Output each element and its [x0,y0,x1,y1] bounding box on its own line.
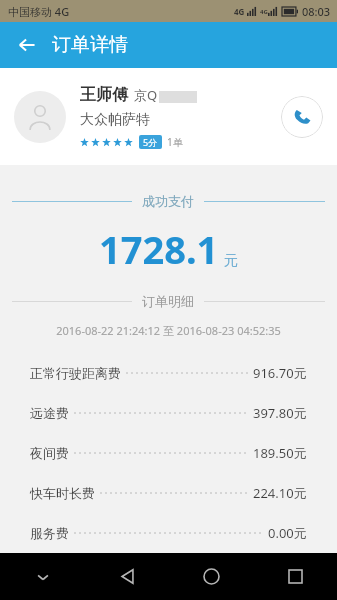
button[interactable]: Call driver [281,96,323,138]
staticText: 189.50元 [253,444,307,462]
staticText: 正常行驶距离费 [30,365,121,381]
staticText: 5分 [143,136,158,148]
staticText: 08:03 [302,4,331,19]
staticText: 订单明细 [142,293,194,309]
button[interactable]: Back [85,553,169,600]
staticText: 王师傅 [80,85,128,105]
staticText: 916.70元 [253,364,307,382]
staticText: 2016-08-22 21:24:12 至 2016-08-23 04:52:3… [0,323,337,338]
button[interactable]: Home [169,553,253,600]
staticText: 224.10元 [253,484,307,502]
staticText: 订单详情 [52,33,128,57]
staticText: 成功支付 [142,193,194,209]
staticText: 1728.1 [99,223,219,275]
staticText: 大众帕萨特 [80,111,150,129]
staticText: 快车时长费 [30,485,95,501]
staticText: 0.00元 [268,524,307,542]
staticText: 元 [224,252,238,270]
staticText: 397.80元 [253,404,307,422]
staticText: 1单 [167,135,183,149]
staticText: 服务费 [30,525,69,541]
button[interactable]: 王师傅 [0,68,337,165]
button[interactable]: Hide navigation bar [0,553,85,600]
staticText: 中国移动 4G [8,4,70,19]
staticText: 4G [260,8,268,16]
staticText: 4G [234,6,245,17]
staticText: 夜间费 [30,445,69,461]
button[interactable]: Recent apps [253,553,337,600]
button[interactable]: Back [8,26,46,64]
staticText: 京Q [134,86,158,104]
staticText: 远途费 [30,405,69,421]
